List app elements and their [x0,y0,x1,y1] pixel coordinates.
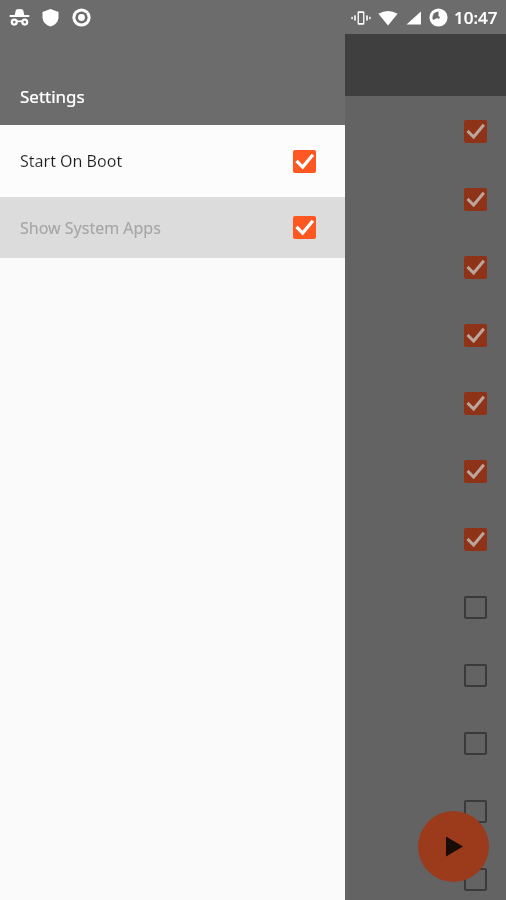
button[interactable]: Toggle app 1 [464,120,487,143]
button[interactable]: Toggle app 7 [464,528,487,551]
button[interactable]: Toggle app 9 [464,664,487,687]
staticText: Show System Apps [20,217,293,239]
staticText: Settings [20,85,85,108]
button[interactable]: Toggle app 6 [464,460,487,483]
button[interactable]: Settings [0,0,345,125]
button[interactable]: Play [418,811,489,882]
button[interactable]: Start On Boot [0,125,345,197]
button[interactable]: Toggle app 4 [464,324,487,347]
staticText: 10:47 [454,6,498,29]
button[interactable]: Toggle app 11 [464,800,487,823]
button[interactable]: Toggle app 3 [464,256,487,279]
button[interactable]: Toggle app 12 [464,868,487,891]
button[interactable]: Toggle app 2 [464,188,487,211]
button[interactable]: Toggle app 8 [464,596,487,619]
button[interactable]: Toggle app 5 [464,392,487,415]
button[interactable]: Toggle app 10 [464,732,487,755]
staticText: Start On Boot [20,150,293,172]
button[interactable]: Show System Apps [0,197,345,258]
